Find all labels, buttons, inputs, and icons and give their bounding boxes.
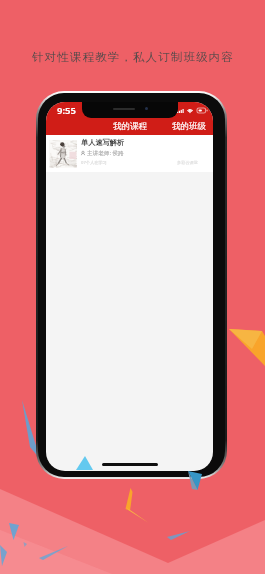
button[interactable]: 单人速写解析 bbox=[46, 135, 213, 172]
staticText: 07个人在学习 bbox=[81, 160, 107, 166]
staticText: 9:55 bbox=[57, 104, 76, 117]
staticText: 主讲老师: 侯路 bbox=[87, 149, 124, 157]
staticText: 我的班级 bbox=[172, 121, 206, 132]
staticText: 多彩云课堂 bbox=[177, 160, 198, 165]
staticText: 针对性课程教学，私人订制班级内容 bbox=[32, 50, 234, 64]
staticText: 单人速写解析 bbox=[81, 138, 125, 147]
staticText: 我的课程 bbox=[113, 121, 147, 132]
button[interactable]: 我的课程 bbox=[111, 118, 149, 135]
button[interactable]: 我的班级 bbox=[170, 118, 208, 135]
